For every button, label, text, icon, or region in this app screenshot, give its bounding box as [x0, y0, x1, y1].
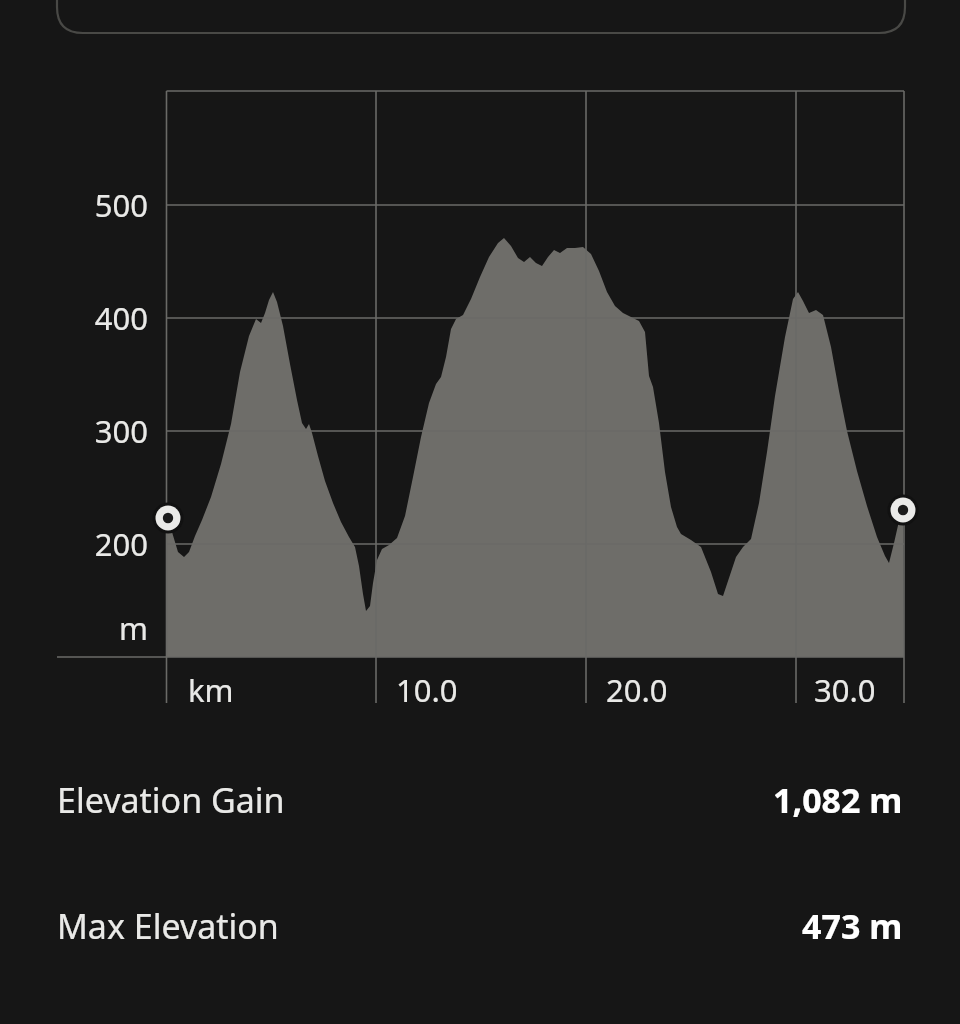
button[interactable]: Max Elevation [0, 888, 960, 964]
staticText: 200 [94, 523, 148, 565]
staticText: km [188, 669, 234, 711]
staticText: Elevation Gain [57, 777, 285, 823]
button[interactable]: Elevation Gain [0, 762, 960, 838]
staticText: 30.0 [814, 669, 876, 711]
staticText: 500 [94, 184, 148, 226]
staticText: 473 m [802, 903, 903, 949]
staticText: 1,082 m [773, 777, 903, 823]
staticText: 10.0 [396, 669, 458, 711]
staticText: m [119, 607, 148, 649]
staticText: 300 [94, 410, 148, 452]
staticText: Max Elevation [57, 903, 279, 949]
staticText: 20.0 [606, 669, 668, 711]
staticText: 400 [94, 297, 148, 339]
